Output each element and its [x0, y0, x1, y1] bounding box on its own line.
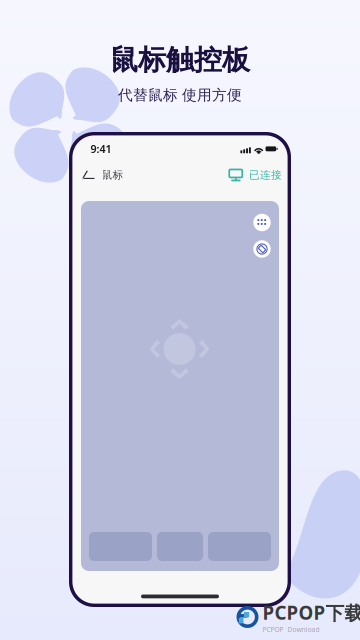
staticText: PCPOP Download — [262, 625, 319, 634]
staticText: 鼠标 — [101, 168, 123, 181]
button[interactable]: 已连接 — [228, 163, 282, 186]
staticText: 已连接 — [249, 168, 282, 181]
button[interactable]: 鼠标 — [81, 163, 123, 186]
staticText: 鼠标触控板 — [110, 43, 250, 77]
staticText: 代替鼠标 使用方便 — [118, 86, 242, 104]
button[interactable]: Rotation lock — [253, 240, 271, 258]
button[interactable]: Keypad — [253, 214, 271, 231]
staticText: PCPOP下载 — [262, 600, 360, 625]
staticText: 9:41 — [90, 142, 111, 156]
